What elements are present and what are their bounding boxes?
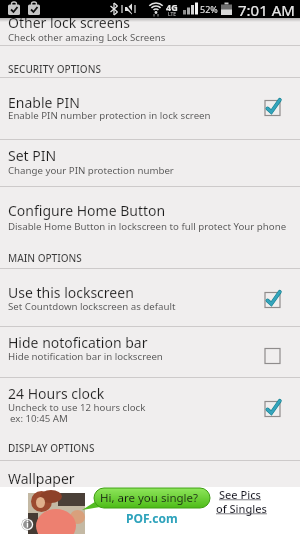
button[interactable]: Configure Home Button [0,187,300,240]
staticText: Enable PIN [8,93,80,112]
staticText: Check other amazing Lock Screens [8,31,166,44]
staticText: Other lock screens [8,13,130,32]
staticText: Hide notofication bar [8,333,148,352]
button[interactable]: Enable PIN [0,78,300,139]
button[interactable]: Other lock screens [0,18,300,45]
staticText: Use this lockscreen [8,283,134,302]
staticText: Set PIN [8,146,57,165]
staticText: DISPLAY OPTIONS [8,441,95,455]
staticText: LTE [168,11,177,18]
staticText: Enable PIN number protection in lock scr… [8,109,211,122]
button[interactable]: Use this lockscreen [0,269,300,326]
staticText: Hi, are you single? [100,490,199,506]
staticText: 24 Hours clock [8,384,105,403]
staticText: 4G [166,1,178,13]
staticText: SECURITY OPTIONS [8,62,101,76]
staticText: See Pics [219,487,261,502]
staticText: Wallpaper [8,469,75,488]
button[interactable]: 24 Hours clock [0,378,300,432]
button[interactable]: Wallpaper [0,461,300,487]
staticText: 52% [200,3,218,15]
staticText: 7:01 AM [238,0,295,18]
staticText: MAIN OPTIONS [8,251,82,265]
staticText: of Singles [216,501,267,516]
staticText: Hide notification bar in lockscreen [8,350,163,363]
staticText: ex: 10:45 AM [10,412,68,425]
staticText: Uncheck to use 12 hours clock [8,401,146,414]
button[interactable]: Hide notofication bar [0,327,300,377]
staticText: Set Countdown lockscreen as default [8,300,176,313]
button[interactable]: Hi, are you single? [0,487,300,534]
staticText: POF.com [126,510,178,526]
staticText: Change your PIN protection number [8,164,174,177]
staticText: Disable Home Button in lockscreen to ful… [8,220,287,233]
button[interactable]: Set PIN [0,140,300,186]
staticText: Configure Home Button [8,201,166,220]
